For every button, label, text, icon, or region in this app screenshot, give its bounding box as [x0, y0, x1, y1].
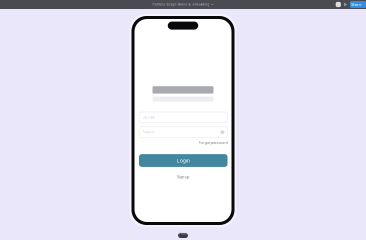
- button[interactable]: Share: [350, 1, 366, 8]
- button[interactable]: Present: [342, 0, 349, 9]
- staticText: Forgot password: [198, 140, 227, 145]
- button[interactable]: Portfolio design mobile & onboarding: [149, 0, 216, 9]
- staticText: Share: [351, 2, 361, 7]
- staticText: Username: [142, 116, 155, 119]
- staticText: iPhone: [178, 232, 188, 239]
- button[interactable]: Sign up: [177, 174, 189, 179]
- button[interactable]: Login: [139, 154, 227, 167]
- button[interactable]: Forgot password: [198, 140, 231, 145]
- button[interactable]: Username: [139, 112, 227, 123]
- staticText: Login: [177, 157, 190, 164]
- button[interactable]: Password: [139, 127, 227, 138]
- staticText: Portfolio design mobile & onboarding: [152, 3, 209, 6]
- staticText: Password: [142, 130, 154, 134]
- button[interactable]: Collaborators: [335, 0, 342, 9]
- staticText: Sign up: [177, 174, 189, 179]
